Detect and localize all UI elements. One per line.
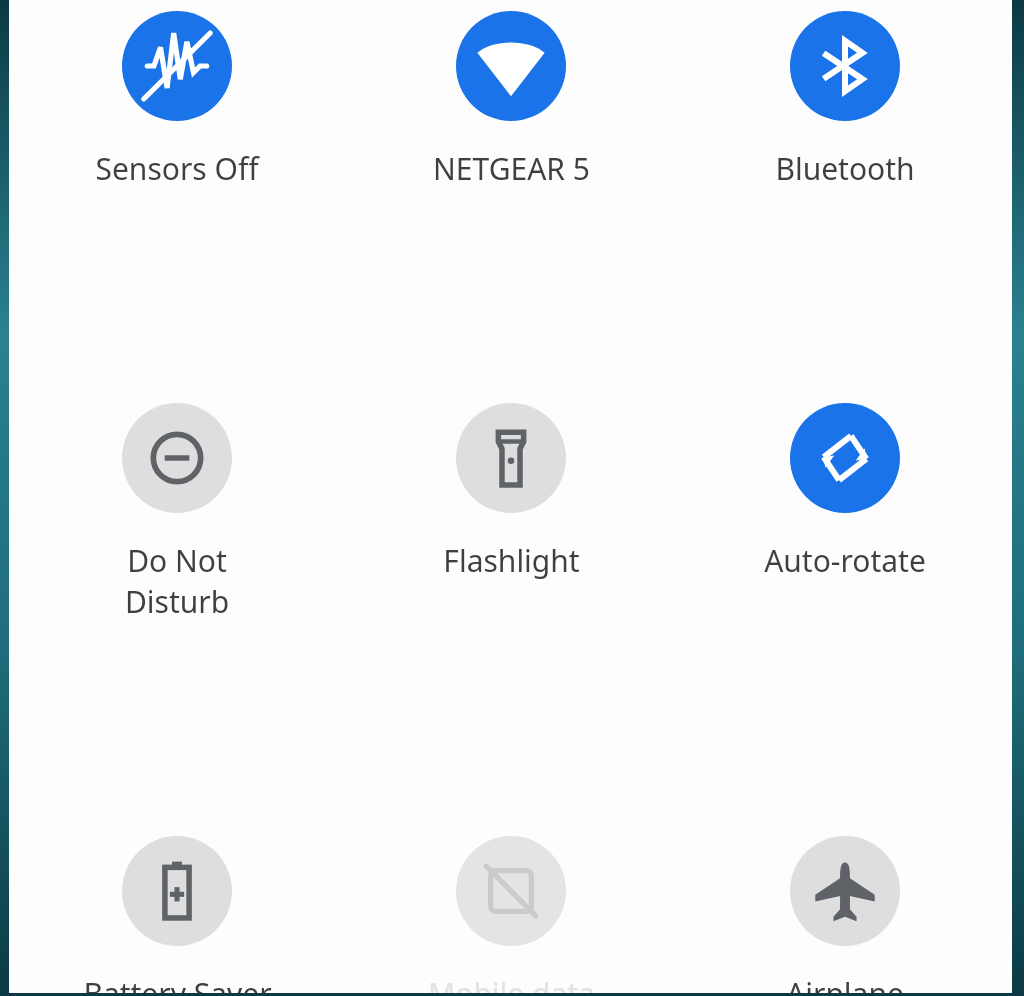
button[interactable]: Airplane mode	[745, 836, 945, 993]
staticText: Auto-rotate	[764, 540, 926, 581]
button[interactable]: NETGEAR 5	[411, 11, 611, 189]
button[interactable]: Sensors Off	[77, 11, 277, 189]
button[interactable]: Bluetooth	[745, 11, 945, 189]
button[interactable]: Battery Saver	[77, 836, 277, 993]
staticText: Flashlight	[443, 540, 580, 581]
button[interactable]: Do Not Disturb	[77, 403, 277, 622]
button[interactable]: Auto-rotate	[745, 403, 945, 581]
staticText: NETGEAR 5	[433, 148, 590, 189]
staticText: Battery Saver	[83, 973, 272, 993]
staticText: Do Not Disturb	[77, 540, 277, 622]
staticText: Mobile data	[428, 973, 595, 993]
button[interactable]: Flashlight	[411, 403, 611, 581]
staticText: Sensors Off	[95, 148, 259, 189]
staticText: Bluetooth	[775, 148, 915, 189]
button[interactable]: Mobile data	[411, 836, 611, 993]
staticText: Airplane mode	[745, 973, 945, 993]
